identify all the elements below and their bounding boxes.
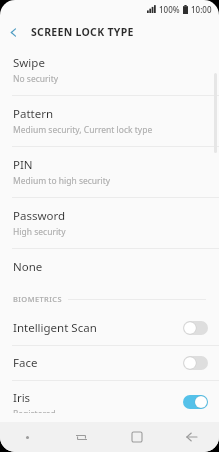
staticText: No security bbox=[13, 73, 59, 85]
staticText: High security bbox=[13, 226, 66, 238]
button[interactable]: Intelligent Scan off bbox=[183, 321, 208, 335]
staticText: Intelligent Scan bbox=[13, 320, 97, 336]
staticText: SCREEN LOCK TYPE bbox=[31, 25, 134, 39]
staticText: 10:00 bbox=[191, 4, 212, 15]
button[interactable]: Swipe bbox=[0, 45, 219, 95]
button[interactable]: PIN bbox=[0, 147, 219, 197]
staticText: Pattern bbox=[13, 106, 54, 122]
staticText: Swipe bbox=[13, 55, 45, 71]
staticText: None bbox=[13, 259, 43, 275]
button[interactable]: Back bbox=[0, 19, 26, 45]
button[interactable]: None bbox=[0, 249, 219, 285]
button[interactable]: Iris on bbox=[183, 395, 208, 409]
staticText: Medium security, Current lock type bbox=[13, 124, 153, 136]
button[interactable]: Iris bbox=[0, 381, 219, 422]
staticText: Registered bbox=[13, 408, 56, 413]
staticText: PIN bbox=[13, 157, 33, 173]
staticText: BIOMETRICS bbox=[13, 294, 62, 304]
button[interactable]: Back bbox=[164, 422, 219, 452]
button[interactable]: Indicator bbox=[0, 422, 54, 452]
staticText: Face bbox=[13, 355, 38, 371]
button[interactable]: Password bbox=[0, 198, 219, 248]
button[interactable]: Home bbox=[109, 422, 164, 452]
button[interactable]: Pattern bbox=[0, 96, 219, 146]
button[interactable]: Intelligent Scan bbox=[0, 311, 219, 345]
staticText: Medium to high security bbox=[13, 175, 111, 187]
staticText: Iris bbox=[13, 390, 31, 406]
staticText: 100% bbox=[159, 4, 180, 15]
staticText: Password bbox=[13, 208, 66, 224]
button[interactable]: Face off bbox=[183, 356, 208, 370]
button[interactable]: Recents bbox=[54, 422, 109, 452]
button[interactable]: Face bbox=[0, 346, 219, 380]
